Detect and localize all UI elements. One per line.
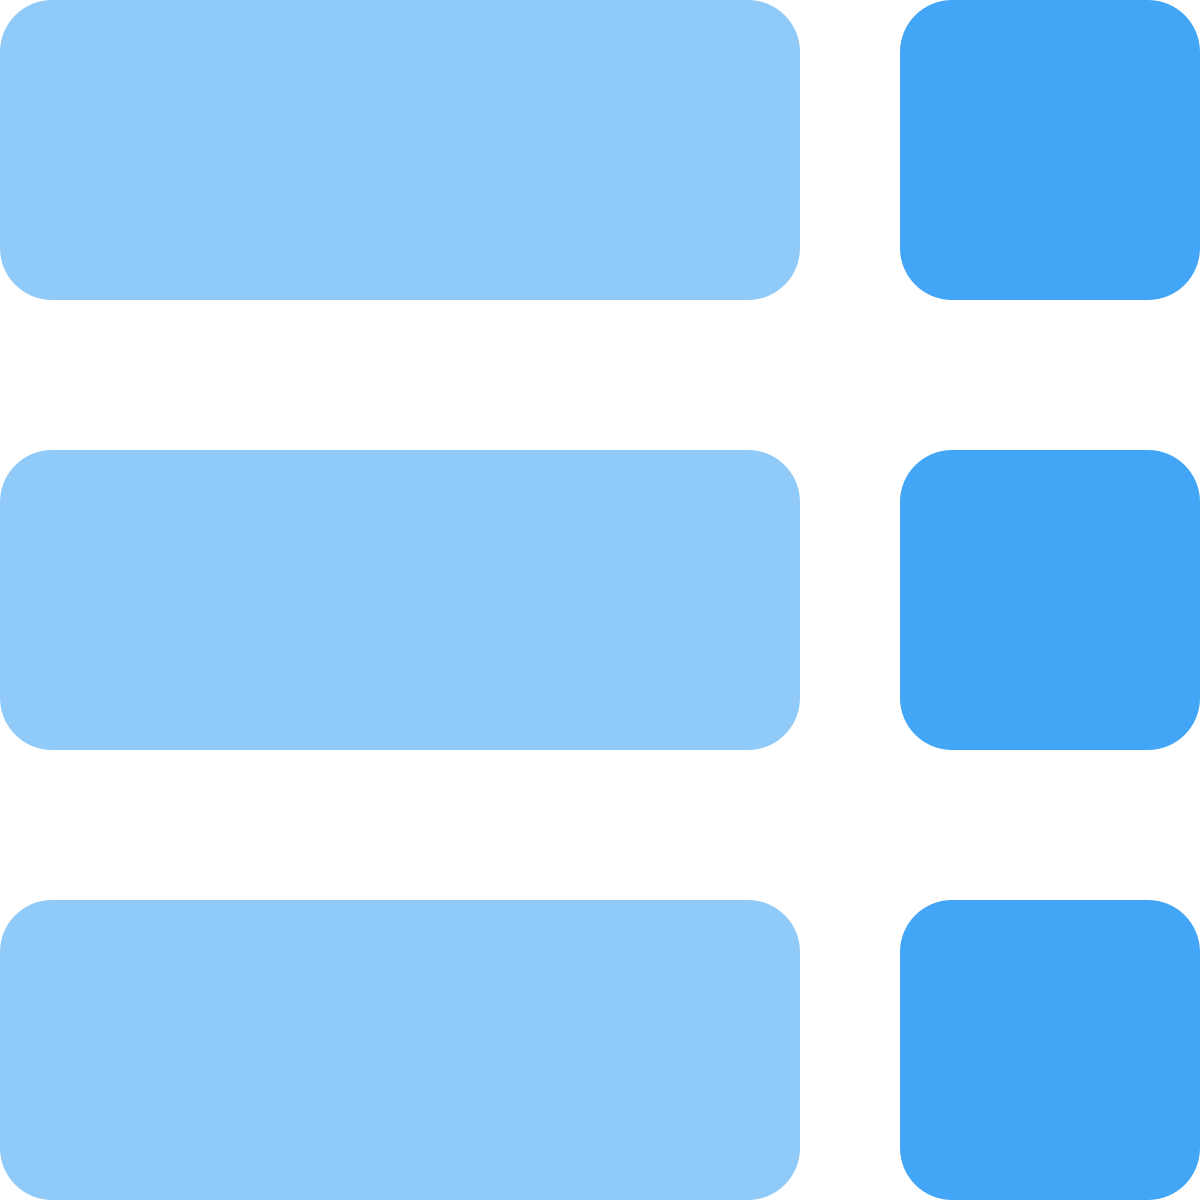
button[interactable]: Third row [0,900,1200,1200]
button[interactable]: Second row [0,450,1200,750]
button[interactable]: First row [0,0,1200,300]
